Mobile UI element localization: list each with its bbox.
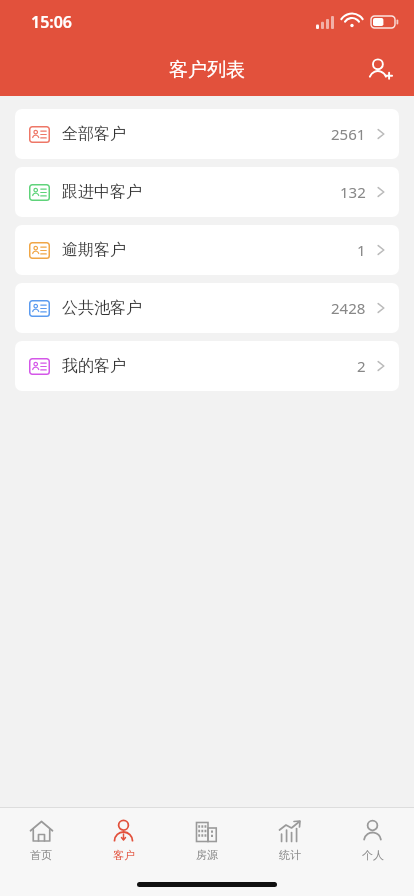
button[interactable]: 客户 bbox=[82, 808, 165, 872]
staticText: 首页 bbox=[30, 848, 52, 862]
staticText: 个人 bbox=[362, 848, 384, 862]
staticText: 1 bbox=[357, 240, 366, 260]
staticText: 2561 bbox=[331, 124, 366, 144]
button[interactable]: 首页 bbox=[0, 808, 82, 872]
staticText: 15:06 bbox=[31, 11, 73, 33]
staticText: 2428 bbox=[331, 298, 366, 318]
staticText: 客户 bbox=[113, 848, 135, 862]
staticText: 统计 bbox=[279, 848, 301, 862]
button[interactable]: 逾期客户 bbox=[15, 225, 399, 275]
button[interactable]: 公共池客户 bbox=[15, 283, 399, 333]
staticText: 跟进中客户 bbox=[62, 182, 142, 202]
button[interactable]: 房源 bbox=[165, 808, 248, 872]
staticText: 房源 bbox=[196, 848, 218, 862]
staticText: 我的客户 bbox=[62, 356, 126, 376]
staticText: 客户列表 bbox=[169, 58, 245, 82]
button[interactable]: Add customer bbox=[358, 48, 402, 92]
staticText: 逾期客户 bbox=[62, 240, 126, 260]
button[interactable]: 跟进中客户 bbox=[15, 167, 399, 217]
staticText: 2 bbox=[357, 356, 366, 376]
button[interactable]: 全部客户 bbox=[15, 109, 399, 159]
staticText: 全部客户 bbox=[62, 124, 126, 144]
button[interactable]: 我的客户 bbox=[15, 341, 399, 391]
button[interactable]: 个人 bbox=[331, 808, 414, 872]
staticText: 公共池客户 bbox=[62, 298, 142, 318]
button[interactable]: 统计 bbox=[248, 808, 331, 872]
staticText: 132 bbox=[340, 182, 366, 202]
